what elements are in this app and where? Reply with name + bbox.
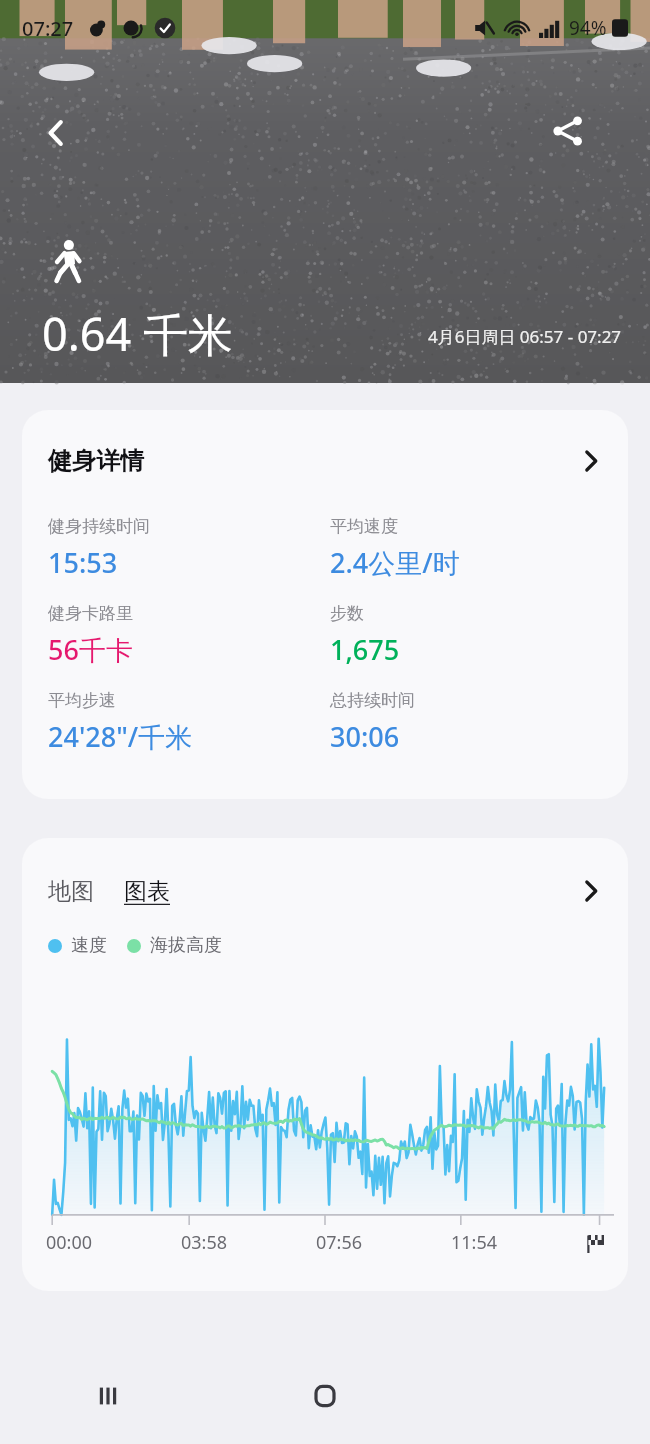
button[interactable]: 图表 — [124, 877, 170, 906]
staticText: 07:27 — [22, 15, 74, 42]
staticText: 健身持续时间 — [48, 516, 150, 537]
staticText: 健身卡路里 — [48, 603, 133, 624]
staticText: 平均步速 — [48, 690, 116, 711]
staticText: 图表 — [124, 877, 170, 906]
staticText: 4月6日周日 06:57 - 07:27 — [428, 325, 622, 348]
button[interactable]: 健身详情 — [22, 410, 628, 494]
staticText: 24'28"/千米 — [48, 718, 193, 755]
staticText: 1,675 — [330, 631, 400, 668]
staticText: 56千卡 — [48, 631, 133, 668]
button[interactable]: Recents — [0, 1348, 216, 1444]
staticText: 地图 — [48, 877, 94, 906]
button[interactable]: Share — [540, 103, 596, 159]
staticText: 速度 — [71, 934, 107, 957]
staticText: 94% — [569, 15, 607, 41]
button[interactable]: Open chart — [576, 876, 606, 906]
staticText: 0.64 千米 — [42, 303, 233, 364]
staticText: 11:54 — [451, 1230, 498, 1255]
button[interactable]: 地图 — [48, 877, 94, 906]
button[interactable]: Back — [28, 105, 84, 161]
staticText: 总持续时间 — [330, 690, 415, 711]
staticText: 30:06 — [330, 718, 400, 755]
staticText: 00:00 — [46, 1230, 93, 1255]
button[interactable]: Home — [216, 1348, 433, 1444]
staticText: 07:56 — [316, 1230, 363, 1255]
staticText: 2.4公里/时 — [330, 544, 460, 581]
staticText: 健身详情 — [48, 446, 144, 476]
staticText: 平均速度 — [330, 516, 398, 537]
staticText: 步数 — [330, 603, 364, 624]
staticText: 海拔高度 — [150, 934, 222, 957]
staticText: 03:58 — [181, 1230, 228, 1255]
staticText: 15:53 — [48, 544, 118, 581]
